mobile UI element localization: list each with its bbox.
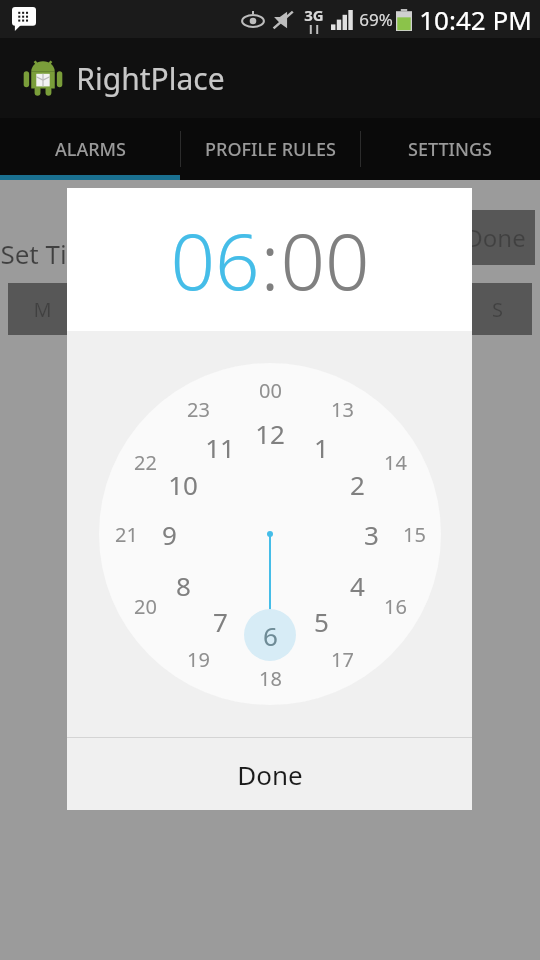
staticText: Set Time xyxy=(0,236,106,271)
button[interactable]: S xyxy=(462,283,532,335)
staticText: 1 xyxy=(314,430,329,465)
staticText: Done xyxy=(237,757,303,792)
button[interactable]: Done xyxy=(67,738,472,810)
staticText: 69% xyxy=(359,8,393,31)
button[interactable]: 7 xyxy=(198,599,242,643)
button[interactable]: F xyxy=(310,283,380,335)
staticText: SETTINGS xyxy=(408,137,492,162)
staticText: ALARMS xyxy=(55,137,126,162)
button[interactable]: PROFILE RULES xyxy=(180,118,360,180)
button[interactable]: 17 xyxy=(322,639,362,679)
staticText: 9 xyxy=(162,517,177,552)
button[interactable]: 6 xyxy=(248,613,292,657)
staticText: 12 xyxy=(255,416,285,451)
button[interactable]: 00 xyxy=(250,370,290,410)
staticText: 10 xyxy=(168,467,198,502)
staticText: PROFILE RULES xyxy=(205,137,336,162)
staticText: 16 xyxy=(384,593,407,620)
button[interactable]: 19 xyxy=(178,639,218,679)
button[interactable]: 14 xyxy=(375,442,415,482)
staticText: 7 xyxy=(213,604,228,639)
button[interactable]: 06 xyxy=(170,207,260,313)
button[interactable]: 16 xyxy=(375,586,415,626)
staticText: 14 xyxy=(384,449,407,476)
staticText: 11 xyxy=(205,430,235,465)
staticText: 19 xyxy=(187,646,210,673)
button[interactable]: 1 xyxy=(299,425,343,469)
staticText: 22 xyxy=(134,449,157,476)
button[interactable]: M xyxy=(8,283,77,335)
button[interactable]: Done xyxy=(455,210,535,265)
staticText: 3 xyxy=(364,517,379,552)
button[interactable]: 18 xyxy=(250,658,290,698)
button[interactable]: 9 xyxy=(147,512,191,556)
button[interactable]: 13 xyxy=(322,389,362,429)
button[interactable]: 10 xyxy=(161,462,205,506)
button[interactable]: 11 xyxy=(198,425,242,469)
button[interactable]: W xyxy=(158,283,228,335)
staticText: 06 xyxy=(170,207,260,313)
staticText: 17 xyxy=(331,646,354,673)
button[interactable]: 22 xyxy=(125,442,165,482)
staticText: 23 xyxy=(187,396,210,423)
button[interactable]: 21 xyxy=(106,514,146,554)
staticText: 10:42 PM xyxy=(419,2,532,37)
button[interactable]: 8 xyxy=(161,563,205,607)
button[interactable]: 23 xyxy=(178,389,218,429)
staticText: RightPlace xyxy=(76,58,225,99)
staticText: 21 xyxy=(115,521,138,548)
staticText: : xyxy=(260,207,280,313)
button[interactable]: 4 xyxy=(335,563,379,607)
staticText: 5 xyxy=(314,604,329,639)
button[interactable]: 5 xyxy=(299,599,343,643)
button[interactable]: ALARMS xyxy=(0,118,180,180)
staticText: 6 xyxy=(263,618,278,653)
button[interactable]: T xyxy=(83,283,152,335)
staticText: 18 xyxy=(259,665,282,692)
staticText: 8 xyxy=(176,568,191,603)
staticText: 3G xyxy=(304,5,324,25)
button[interactable]: S xyxy=(386,283,456,335)
button[interactable]: 20 xyxy=(125,586,165,626)
staticText: 15 xyxy=(403,521,426,548)
staticText: 4 xyxy=(350,568,365,603)
button[interactable]: SETTINGS xyxy=(360,118,540,180)
button[interactable]: T xyxy=(234,283,304,335)
staticText: Done xyxy=(465,221,526,254)
button[interactable]: 15 xyxy=(394,514,434,554)
staticText: 2 xyxy=(350,467,365,502)
staticText: 13 xyxy=(331,396,354,423)
staticText: S xyxy=(492,296,503,323)
staticText: M xyxy=(33,296,52,323)
staticText: 20 xyxy=(134,593,157,620)
button[interactable]: 00 xyxy=(280,207,370,313)
button[interactable]: 2 xyxy=(335,462,379,506)
staticText: 00 xyxy=(259,377,282,404)
button[interactable]: 12 xyxy=(248,411,292,455)
staticText: 00 xyxy=(280,207,370,313)
button[interactable]: 3 xyxy=(349,512,393,556)
